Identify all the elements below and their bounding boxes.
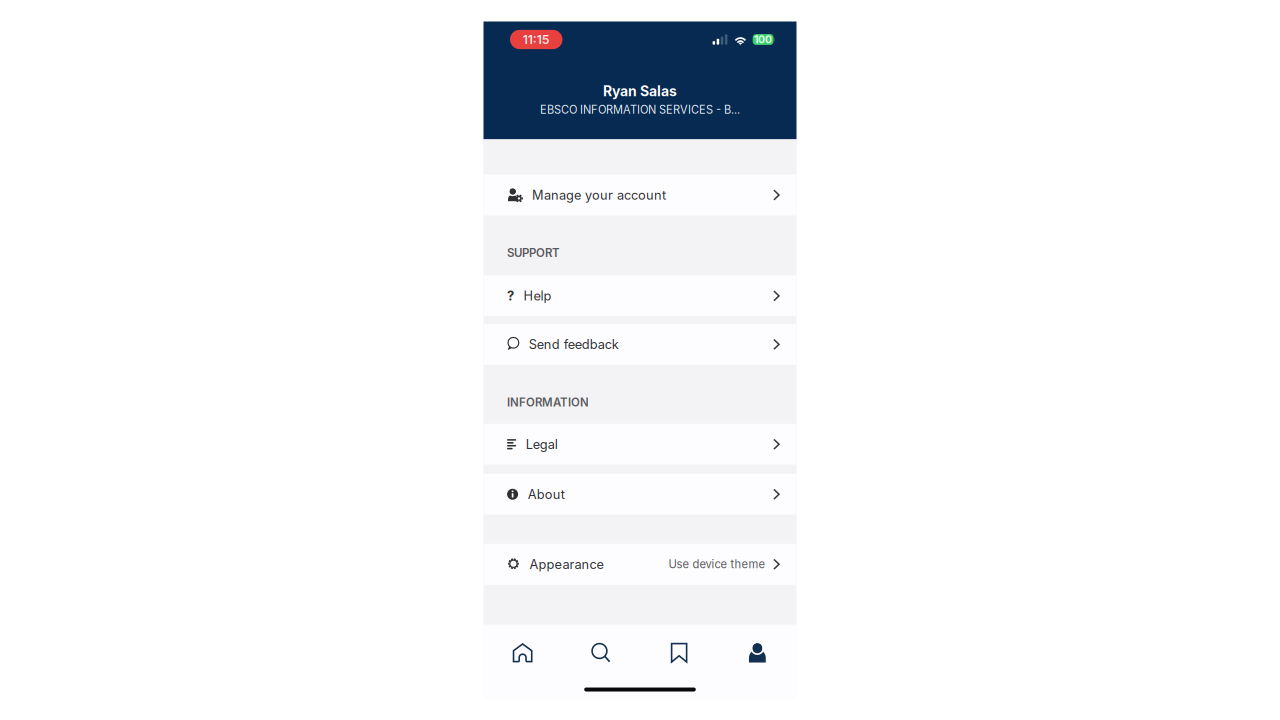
button[interactable]: ?	[483, 275, 796, 316]
staticText: Legal	[526, 436, 558, 452]
button[interactable]: Send feedback	[483, 324, 796, 365]
staticText: Appearance	[529, 556, 603, 572]
button[interactable]: Saved	[640, 624, 718, 681]
button[interactable]: About	[483, 474, 796, 515]
staticText: INFORMATION	[507, 395, 589, 409]
staticText: Send feedback	[529, 337, 619, 352]
staticText: 100	[754, 33, 772, 46]
staticText: Ryan Salas	[603, 83, 677, 100]
staticText: Use device theme	[669, 557, 766, 571]
button[interactable]: Search	[562, 624, 640, 681]
staticText: Manage your account	[532, 187, 666, 203]
button[interactable]: Home	[483, 624, 562, 681]
staticText: About	[528, 486, 565, 502]
button[interactable]: Manage your account	[483, 174, 796, 215]
staticText: 11:15	[523, 32, 550, 47]
button[interactable]: Profile	[718, 624, 796, 681]
staticText: EBSCO INFORMATION SERVICES - B...	[540, 103, 740, 116]
staticText: Help	[523, 288, 551, 304]
button[interactable]: Appearance	[483, 544, 796, 585]
staticText: SUPPORT	[507, 246, 560, 260]
button[interactable]: Legal	[483, 424, 796, 465]
staticText: ?	[507, 288, 514, 304]
